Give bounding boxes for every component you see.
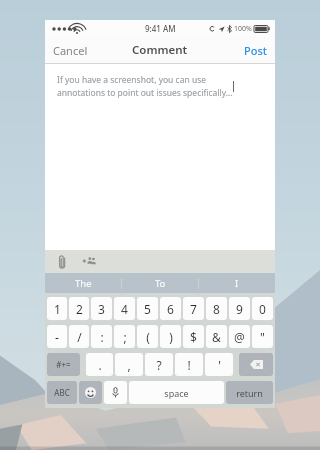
- button[interactable]: Add people: [80, 253, 98, 271]
- button[interactable]: The: [45, 273, 121, 293]
- button[interactable]: 5: [137, 297, 158, 320]
- staticText: -: [55, 329, 59, 345]
- staticText: return: [236, 387, 263, 399]
- staticText: #+=: [56, 359, 71, 370]
- button[interactable]: return: [226, 381, 273, 404]
- button[interactable]: Backspace: [239, 353, 273, 376]
- staticText: 100%: [234, 24, 252, 34]
- button[interactable]: #+=: [47, 353, 80, 376]
- staticText: ,: [127, 357, 131, 373]
- staticText: Cancel: [53, 43, 88, 58]
- button[interactable]: !: [175, 353, 203, 376]
- button[interactable]: ': [205, 353, 233, 376]
- button[interactable]: ?: [145, 353, 173, 376]
- button[interactable]: 6: [160, 297, 181, 320]
- staticText: 6: [167, 301, 174, 317]
- button[interactable]: Dictate: [104, 381, 127, 404]
- staticText: I: [235, 277, 239, 290]
- staticText: The: [75, 277, 92, 290]
- button[interactable]: ,: [115, 353, 143, 376]
- button[interactable]: ;: [114, 325, 135, 348]
- button[interactable]: -: [47, 325, 67, 348]
- button[interactable]: ABC: [47, 381, 77, 404]
- button[interactable]: @: [229, 325, 250, 348]
- button[interactable]: 2: [69, 297, 89, 320]
- button[interactable]: ): [160, 325, 181, 348]
- staticText: @: [234, 329, 245, 345]
- staticText: Post: [244, 43, 267, 58]
- staticText: ": [260, 329, 265, 345]
- staticText: 4: [121, 301, 128, 317]
- staticText: If you have a screenshot, you can use an…: [57, 74, 233, 99]
- button[interactable]: If you have a screenshot, you can use an…: [45, 64, 275, 250]
- button[interactable]: 0: [252, 297, 273, 320]
- staticText: 5: [144, 301, 151, 317]
- staticText: 7: [190, 301, 197, 317]
- staticText: ?: [156, 357, 162, 373]
- staticText: &: [212, 329, 221, 345]
- button[interactable]: To: [122, 273, 198, 293]
- button[interactable]: $: [183, 325, 204, 348]
- staticText: ': [218, 357, 221, 373]
- staticText: ABC: [54, 387, 70, 398]
- staticText: To: [155, 277, 166, 290]
- button[interactable]: I: [199, 273, 275, 293]
- staticText: 3: [98, 301, 105, 317]
- button[interactable]: 3: [91, 297, 112, 320]
- staticText: ;: [123, 329, 127, 345]
- staticText: 9:41 AM: [145, 23, 176, 34]
- button[interactable]: .: [86, 353, 113, 376]
- staticText: ): [169, 329, 173, 345]
- staticText: 2: [76, 301, 83, 317]
- staticText: space: [164, 387, 189, 399]
- button[interactable]: 4: [114, 297, 135, 320]
- button[interactable]: 7: [183, 297, 204, 320]
- staticText: .: [98, 357, 102, 373]
- staticText: 0: [259, 301, 266, 317]
- button[interactable]: (: [137, 325, 158, 348]
- staticText: $: [190, 329, 197, 345]
- staticText: 1: [54, 301, 61, 317]
- button[interactable]: Attach file: [53, 253, 71, 271]
- button[interactable]: :: [91, 325, 112, 348]
- staticText: :: [100, 329, 104, 345]
- button[interactable]: Cancel: [53, 37, 88, 63]
- staticText: /: [77, 329, 82, 345]
- button[interactable]: Post: [244, 37, 267, 63]
- staticText: 8: [213, 301, 220, 317]
- staticText: 9: [236, 301, 243, 317]
- button[interactable]: /: [69, 325, 89, 348]
- staticText: (: [146, 329, 150, 345]
- button[interactable]: ": [252, 325, 273, 348]
- staticText: Comment: [132, 42, 188, 58]
- staticText: !: [187, 357, 191, 373]
- button[interactable]: 8: [206, 297, 227, 320]
- button[interactable]: Emoji: [79, 381, 102, 404]
- button[interactable]: 1: [47, 297, 67, 320]
- button[interactable]: space: [129, 381, 224, 404]
- button[interactable]: &: [206, 325, 227, 348]
- button[interactable]: 9: [229, 297, 250, 320]
